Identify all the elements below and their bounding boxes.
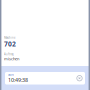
staticText: Start [8,73,14,76]
staticText: mischen [4,56,19,61]
staticText: 702 [4,39,16,48]
button[interactable]: Start [5,72,85,84]
staticText: Maschine [4,36,16,39]
staticText: Auftrag [4,52,14,56]
staticText: 10:49:38 [8,76,28,84]
